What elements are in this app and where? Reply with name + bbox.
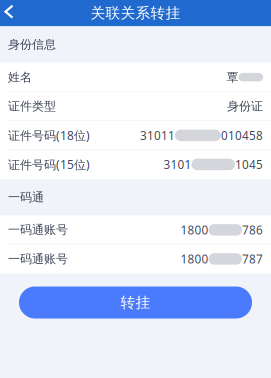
staticText: 身份信息 bbox=[8, 37, 56, 52]
staticText: 786 bbox=[242, 222, 263, 238]
staticText: 姓名 bbox=[8, 70, 32, 84]
staticText: 3101 bbox=[163, 156, 191, 172]
staticText: 证件号码(18位) bbox=[8, 127, 90, 143]
staticText: 1800 bbox=[180, 222, 208, 238]
staticText: 010458 bbox=[221, 127, 263, 143]
staticText: 31011 bbox=[140, 127, 175, 143]
staticText: 身份证 bbox=[227, 99, 263, 114]
staticText: 一码通账号 bbox=[8, 252, 68, 266]
staticText: 一码通 bbox=[8, 190, 44, 204]
staticText: 证件号码(15位) bbox=[8, 156, 90, 172]
staticText: 覃 bbox=[226, 70, 238, 84]
button[interactable]: 转挂 bbox=[19, 286, 252, 318]
staticText: 转挂 bbox=[120, 293, 150, 311]
staticText: 一码通账号 bbox=[8, 222, 68, 237]
staticText: 证件类型 bbox=[8, 99, 56, 114]
staticText: 787 bbox=[242, 251, 263, 267]
button[interactable]: Back bbox=[0, 0, 30, 26]
staticText: 关联关系转挂 bbox=[90, 4, 180, 22]
staticText: 1800 bbox=[180, 251, 208, 267]
staticText: 1045 bbox=[235, 156, 263, 172]
